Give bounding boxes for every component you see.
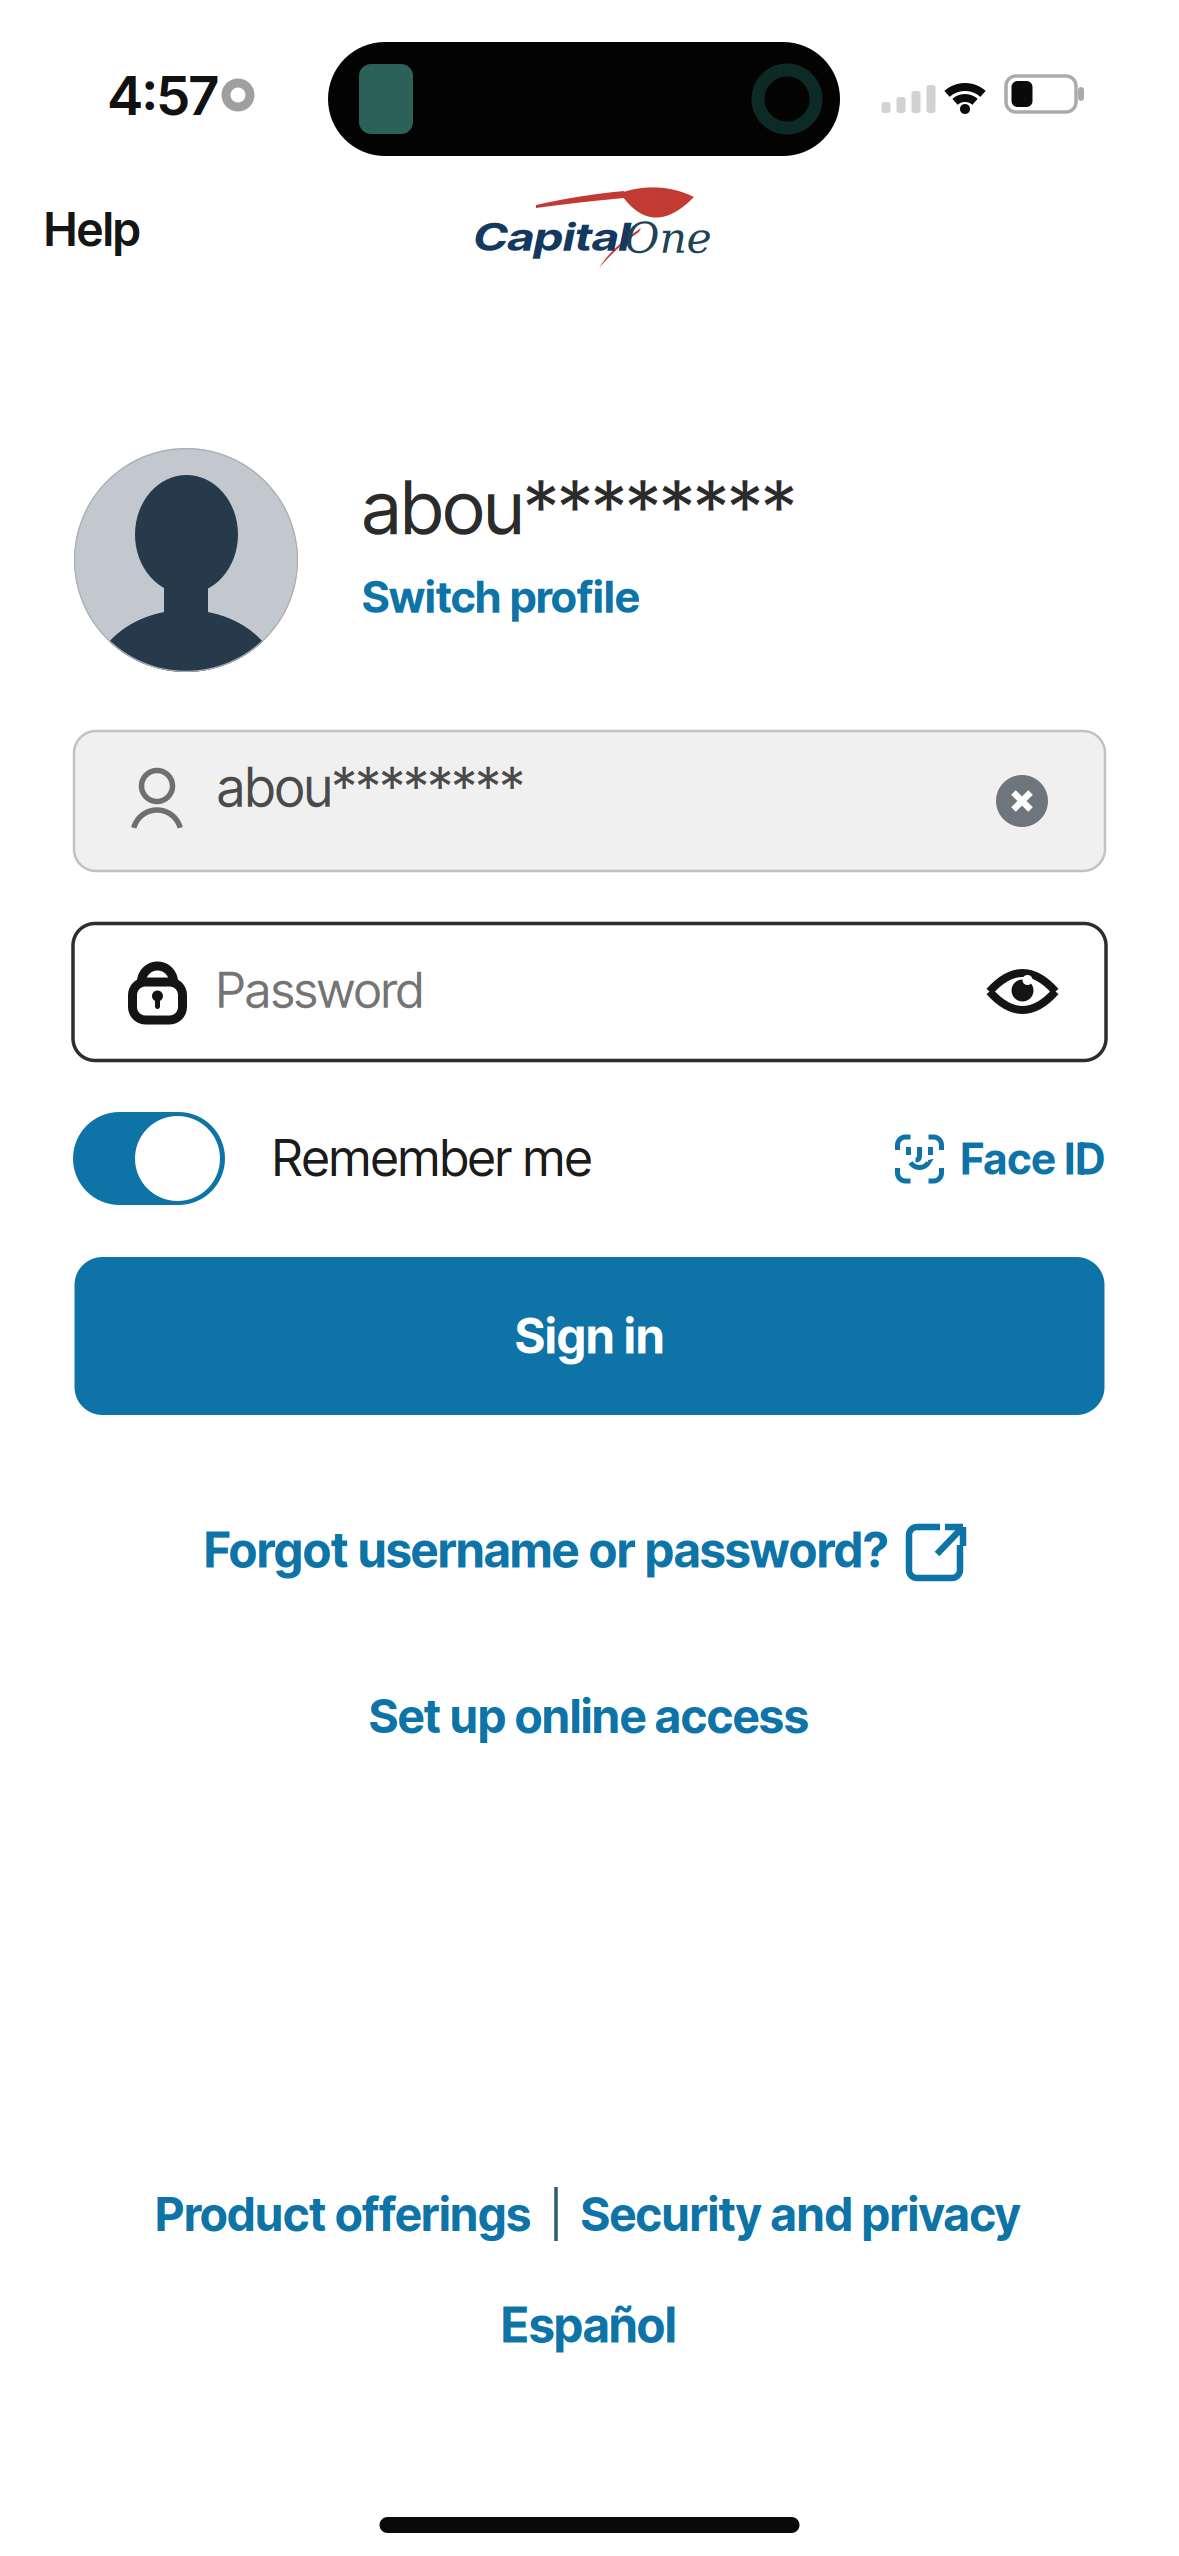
staticText: abou******** xyxy=(217,755,524,819)
staticText: Security and privacy xyxy=(581,2186,1021,2242)
button[interactable]: Show password xyxy=(986,967,1058,1015)
staticText: Capital xyxy=(492,215,611,259)
button[interactable]: Help xyxy=(44,201,140,257)
button[interactable]: Forgot username or password? xyxy=(204,1521,966,1579)
staticText: Español xyxy=(501,2296,677,2354)
button[interactable]: Remember me xyxy=(73,1112,225,1205)
staticText: Password xyxy=(216,960,424,1020)
staticText: Face ID xyxy=(960,1133,1105,1185)
staticText: abou******** xyxy=(362,462,796,552)
staticText: Remember me xyxy=(272,1127,592,1188)
staticText: Help xyxy=(44,201,140,257)
button[interactable]: Switch profile xyxy=(362,570,640,623)
staticText: One xyxy=(624,213,711,263)
button[interactable]: Set up online access xyxy=(369,1688,809,1744)
button[interactable]: Clear username xyxy=(996,775,1048,827)
staticText: Product offerings xyxy=(155,2186,531,2242)
staticText: Set up online access xyxy=(369,1688,809,1744)
staticText: Forgot username or password? xyxy=(204,1521,888,1579)
button[interactable]: Product offerings xyxy=(155,2186,531,2242)
button[interactable]: Español xyxy=(501,2296,677,2354)
button[interactable]: Face ID xyxy=(894,1133,1105,1185)
button[interactable]: Sign in xyxy=(74,1257,1104,1415)
staticText: 4:57 xyxy=(108,62,218,128)
staticText: Sign in xyxy=(515,1307,664,1365)
button[interactable]: Security and privacy xyxy=(581,2186,1021,2242)
staticText: Switch profile xyxy=(362,570,640,623)
